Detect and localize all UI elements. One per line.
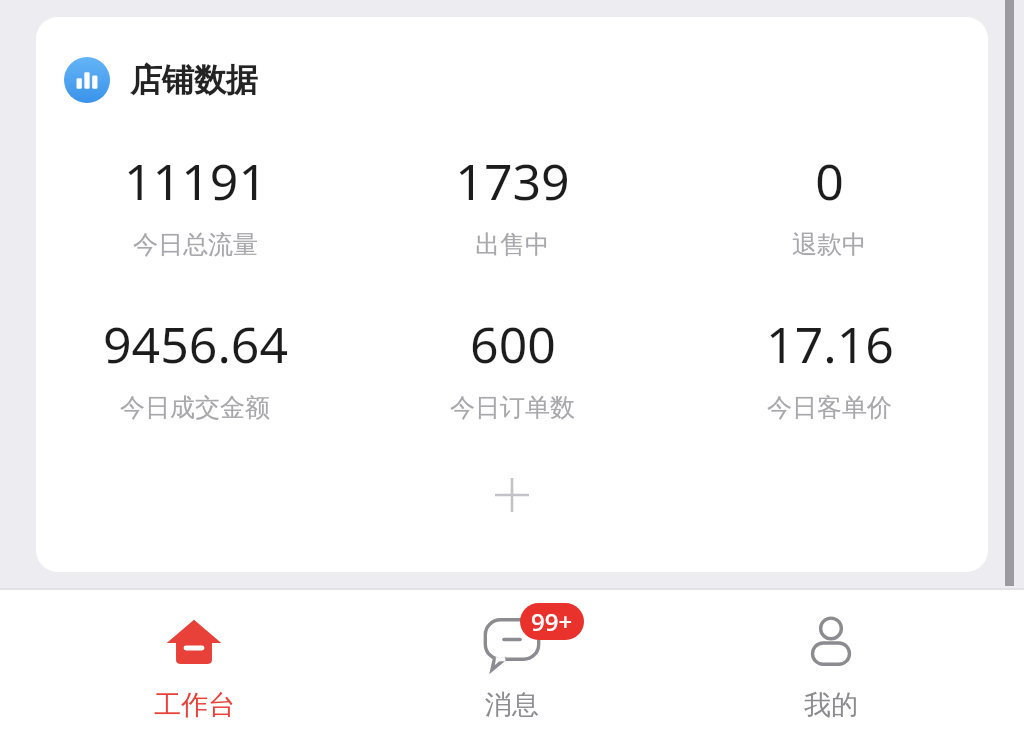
button[interactable]: 600	[354, 310, 671, 423]
staticText: 11191	[124, 147, 267, 215]
staticText: 99+	[531, 605, 573, 638]
button[interactable]: 17.16	[671, 310, 988, 423]
button[interactable]: 11191	[36, 147, 354, 260]
button[interactable]: 店铺数据	[64, 57, 258, 103]
staticText: 今日总流量	[133, 229, 258, 260]
staticText: 17.16	[766, 310, 894, 378]
button[interactable]: Add	[486, 469, 538, 521]
staticText: 退款中	[792, 229, 867, 260]
staticText: 店铺数据	[130, 60, 258, 100]
button[interactable]: 0	[671, 147, 988, 260]
staticText: 1739	[455, 147, 570, 215]
button[interactable]: 消息	[387, 612, 637, 722]
staticText: 今日客单价	[767, 392, 892, 423]
other: 消息	[481, 612, 543, 674]
button[interactable]: 9456.64	[36, 310, 354, 423]
staticText: 今日成交金额	[120, 392, 270, 423]
other: 工作台	[163, 612, 225, 674]
staticText: 0	[815, 147, 844, 215]
button[interactable]: 1739	[354, 147, 671, 260]
staticText: 今日订单数	[450, 392, 575, 423]
staticText: 600	[470, 310, 556, 378]
button[interactable]: 我的	[706, 612, 956, 722]
staticText: 9456.64	[103, 310, 288, 378]
staticText: 出售中	[475, 229, 550, 260]
staticText: 我的	[804, 688, 858, 722]
staticText: 消息	[485, 688, 539, 722]
button[interactable]: 工作台	[69, 612, 319, 722]
other: 我的	[800, 612, 862, 674]
staticText: 工作台	[154, 688, 235, 722]
